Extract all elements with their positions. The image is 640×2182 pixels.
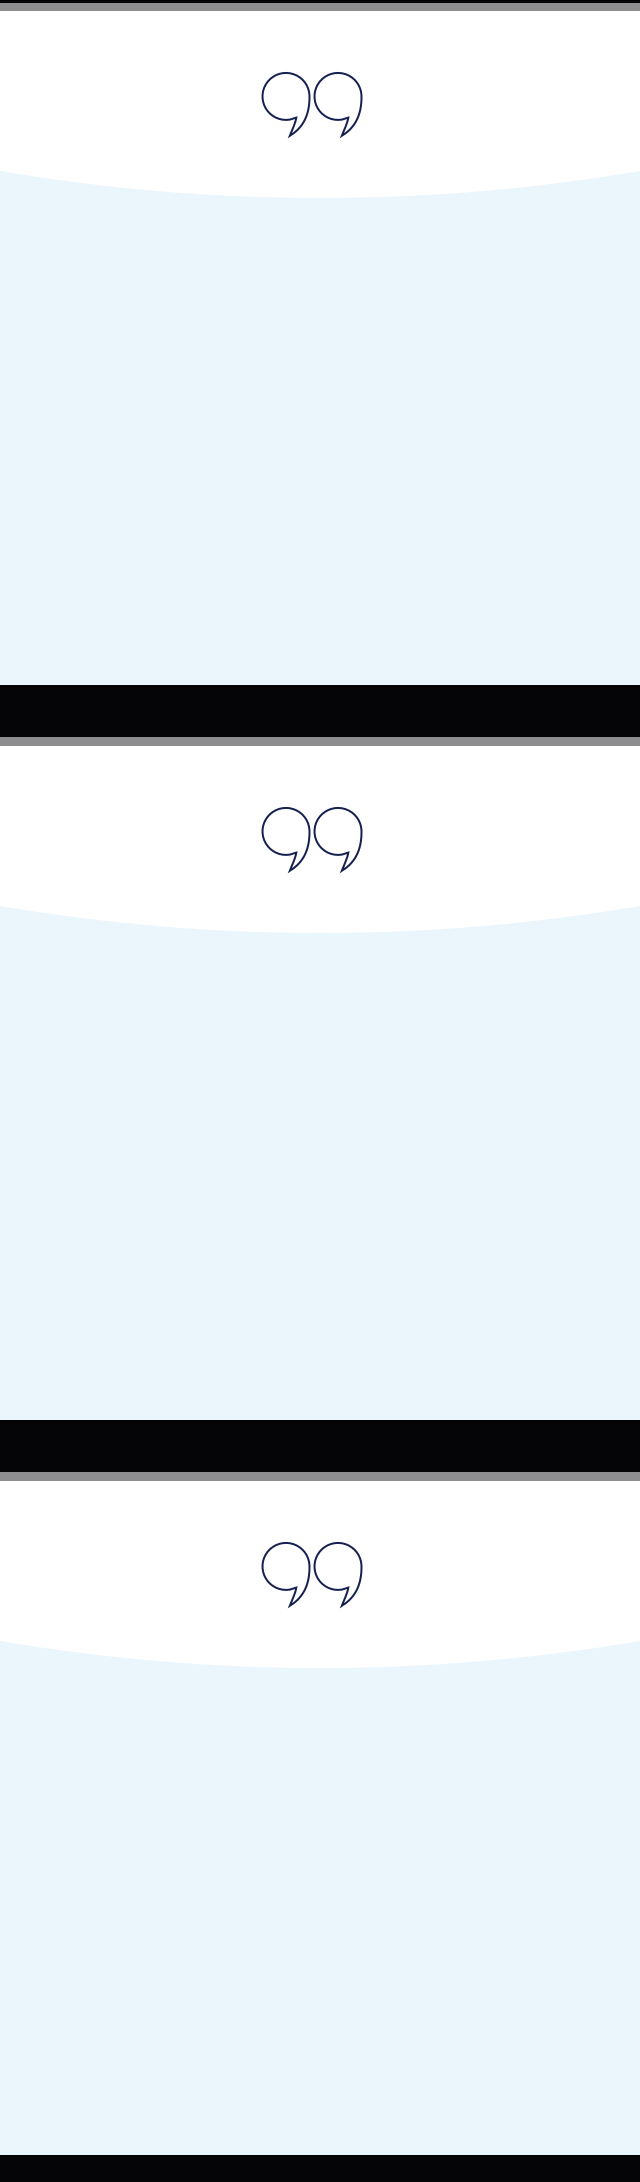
button[interactable]: Testimonial bbox=[0, 11, 640, 685]
button[interactable]: Testimonial bbox=[0, 746, 640, 1420]
button[interactable]: Testimonial bbox=[0, 1481, 640, 2155]
